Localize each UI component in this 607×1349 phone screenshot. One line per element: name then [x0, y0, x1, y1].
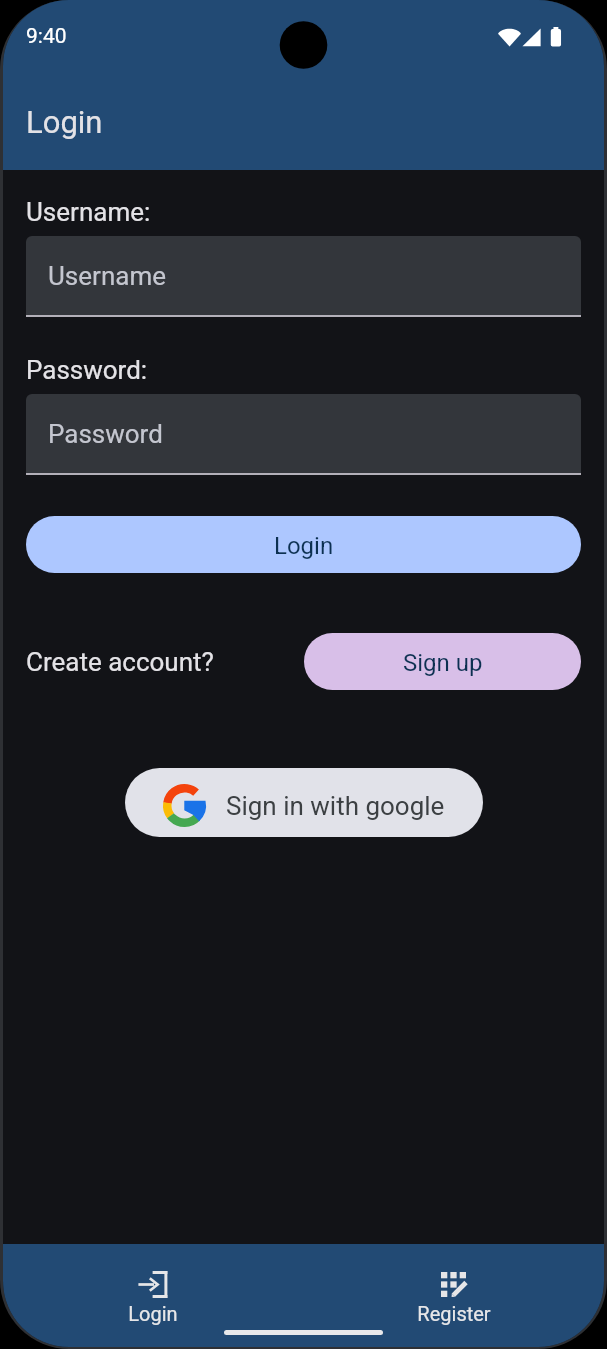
staticText: Username: [48, 261, 166, 291]
other: Login: [138, 1271, 168, 1298]
staticText: Sign up: [403, 649, 483, 677]
staticText: Login: [128, 1302, 178, 1325]
button[interactable]: Register: [303, 1244, 604, 1347]
button[interactable]: Login: [3, 1244, 303, 1347]
button[interactable]: Password: [26, 394, 581, 476]
staticText: Sign in with google: [226, 791, 445, 821]
staticText: Create account?: [26, 647, 214, 677]
staticText: Password: [48, 419, 163, 449]
button[interactable]: Username: [26, 236, 581, 318]
other: Register: [441, 1272, 466, 1297]
staticText: Login: [26, 104, 103, 140]
staticText: 9:40: [26, 24, 67, 49]
button[interactable]: Sign up: [304, 633, 581, 690]
staticText: Username:: [26, 197, 151, 227]
staticText: Login: [274, 532, 334, 560]
button[interactable]: Login: [26, 516, 581, 573]
staticText: Password:: [26, 355, 148, 385]
button[interactable]: Sign in with google: [125, 768, 483, 837]
staticText: Register: [417, 1302, 491, 1325]
